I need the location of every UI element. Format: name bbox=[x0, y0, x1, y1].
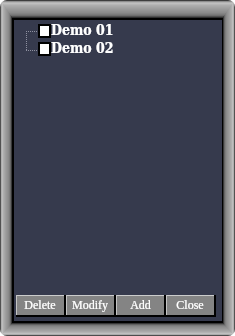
button[interactable]: Modify bbox=[66, 295, 116, 317]
button[interactable]: Delete bbox=[16, 295, 66, 317]
button[interactable]: Close bbox=[166, 295, 216, 317]
staticText: Demo 02 bbox=[51, 40, 114, 56]
staticText: Demo 01 bbox=[51, 22, 114, 38]
button[interactable]: Demo 02 bbox=[14, 42, 222, 60]
button[interactable]: Demo 01 bbox=[14, 24, 222, 42]
staticText: Close bbox=[176, 298, 204, 311]
button[interactable]: Add bbox=[116, 295, 166, 317]
staticText: Add bbox=[130, 298, 151, 311]
staticText: Modify bbox=[72, 298, 108, 311]
staticText: Delete bbox=[24, 298, 56, 311]
